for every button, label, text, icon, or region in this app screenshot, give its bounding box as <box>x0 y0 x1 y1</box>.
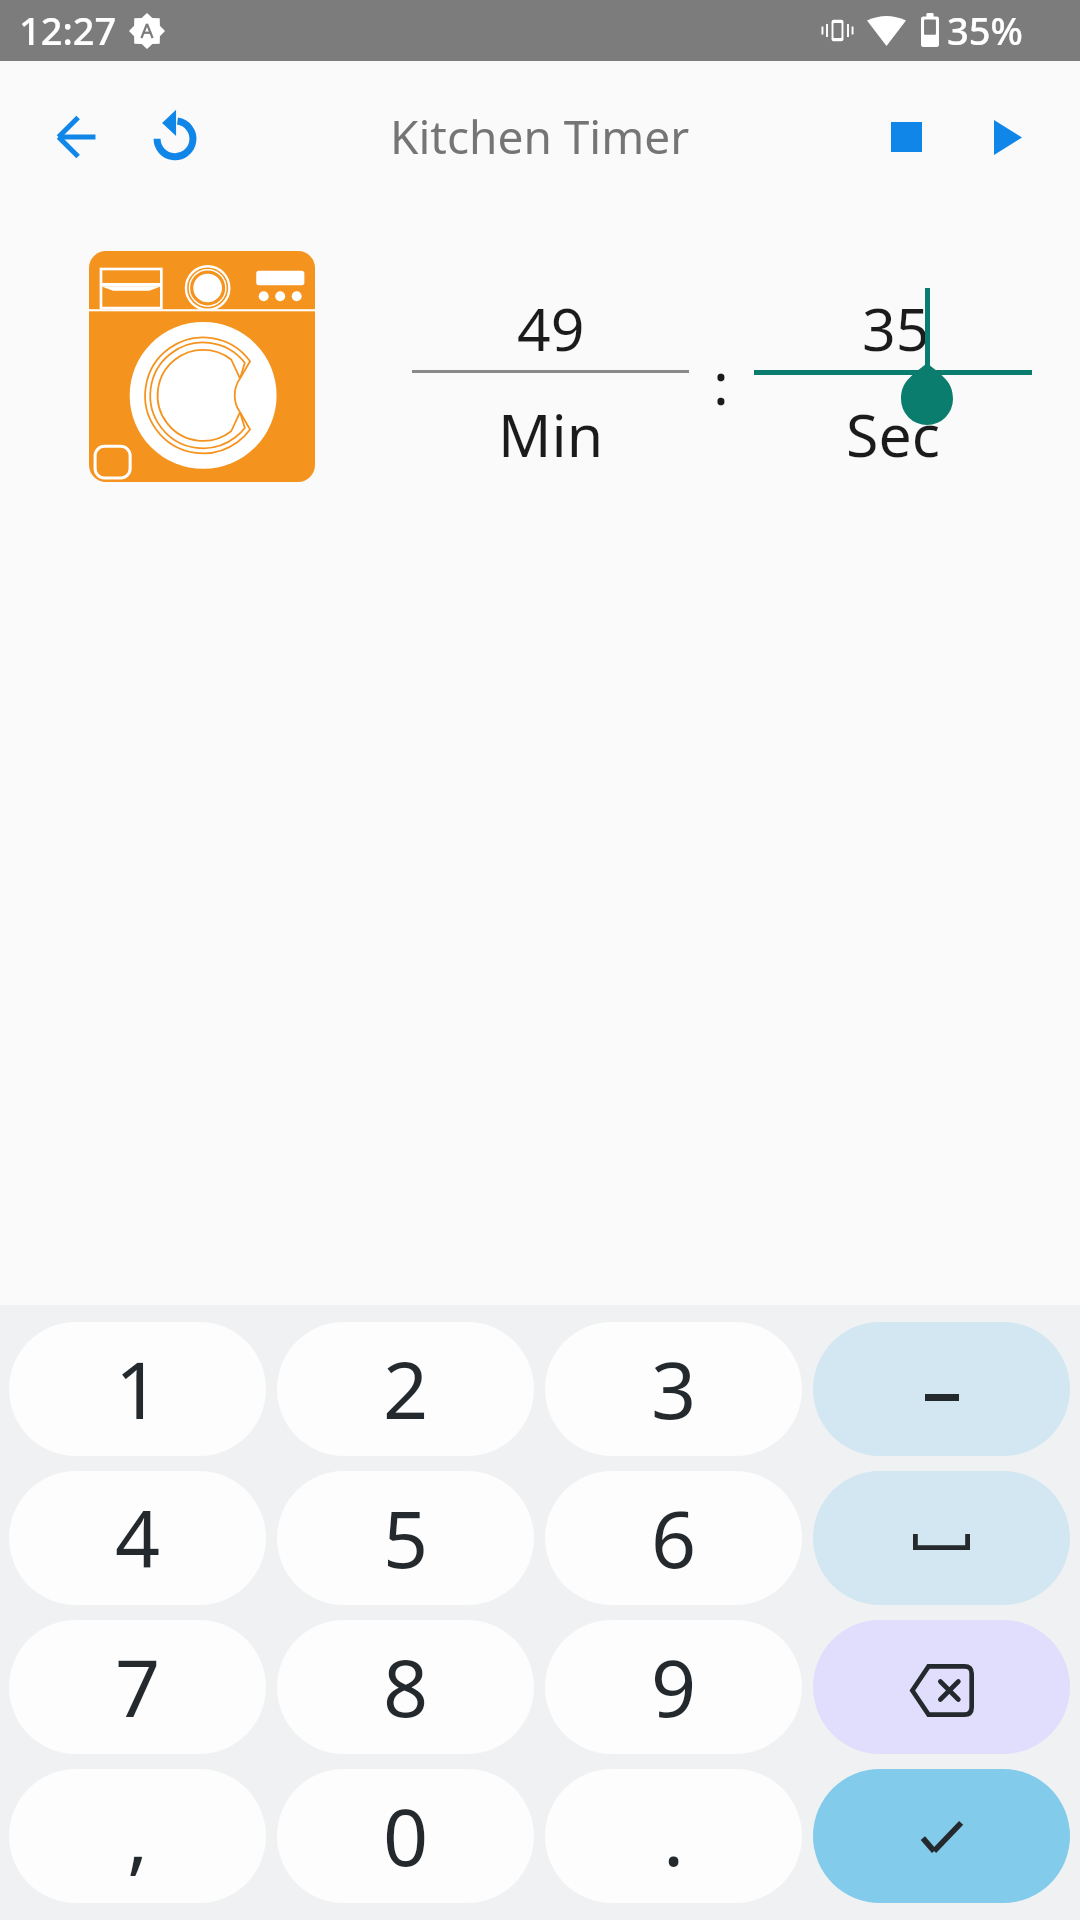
button[interactable]: . <box>545 1769 802 1903</box>
button[interactable]: 49 <box>412 280 689 373</box>
staticText: 35 <box>862 288 930 368</box>
staticText: , <box>127 1782 149 1890</box>
button[interactable]: 1 <box>9 1322 266 1456</box>
button[interactable]: 8 <box>277 1620 534 1754</box>
button[interactable]: Space <box>813 1471 1070 1605</box>
staticText: 35% <box>947 4 1023 56</box>
button[interactable]: 9 <box>545 1620 802 1754</box>
staticText: . <box>663 1782 685 1890</box>
button[interactable]: Reset <box>129 91 221 183</box>
button[interactable]: 7 <box>9 1620 266 1754</box>
button[interactable]: , <box>9 1769 266 1903</box>
staticText: 4 <box>115 1484 161 1592</box>
button[interactable]: 2 <box>277 1322 534 1456</box>
button[interactable]: Delete <box>813 1620 1070 1754</box>
button[interactable]: Minus <box>813 1322 1070 1456</box>
button[interactable]: 0 <box>277 1769 534 1903</box>
button[interactable]: Back <box>30 91 122 183</box>
staticText: 49 <box>517 288 585 368</box>
staticText: Min <box>498 394 604 474</box>
staticText: 7 <box>115 1633 161 1741</box>
staticText: : <box>713 342 729 422</box>
staticText: 6 <box>651 1484 697 1592</box>
staticText: 2 <box>383 1335 429 1443</box>
button[interactable]: Done <box>813 1769 1070 1903</box>
staticText: Sec <box>846 394 940 474</box>
button[interactable]: 3 <box>545 1322 802 1456</box>
button[interactable]: 35 <box>754 280 1032 373</box>
staticText: 3 <box>651 1335 697 1443</box>
button[interactable]: Start <box>962 91 1054 183</box>
button[interactable]: Stop <box>860 91 952 183</box>
staticText: 8 <box>383 1633 429 1741</box>
staticText: 12:27 <box>19 4 117 56</box>
staticText: 1 <box>115 1335 161 1443</box>
button[interactable]: 6 <box>545 1471 802 1605</box>
button[interactable]: 5 <box>277 1471 534 1605</box>
staticText: Kitchen Timer <box>390 105 690 168</box>
staticText: 0 <box>383 1782 429 1890</box>
staticText: 9 <box>651 1633 697 1741</box>
button[interactable]: 4 <box>9 1471 266 1605</box>
staticText: 5 <box>383 1484 429 1592</box>
